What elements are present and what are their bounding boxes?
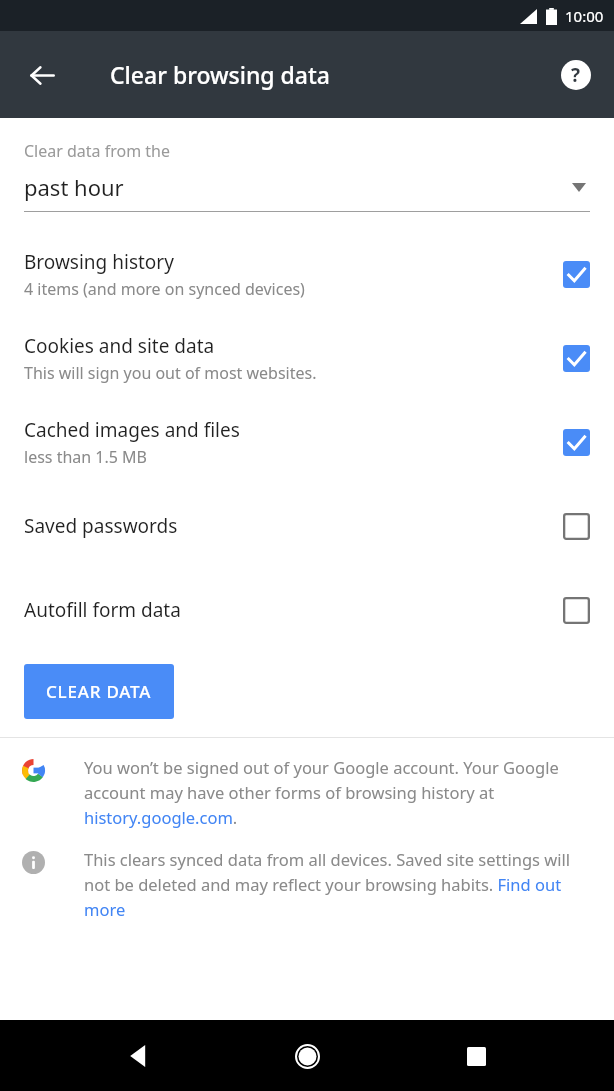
staticText: Browsing history [24,249,174,275]
button[interactable]: Home [277,1026,337,1086]
staticText: past hour [24,172,572,202]
staticText: Clear data from the [24,140,171,162]
button[interactable]: Back [109,1026,169,1086]
button[interactable]: Recent apps [446,1026,506,1086]
staticText: Saved passwords [24,513,178,539]
button[interactable]: Help [552,51,600,99]
staticText: 10:00 [565,6,604,26]
button[interactable]: CLEAR DATA [24,664,174,719]
staticText: 4 items (and more on synced devices) [24,278,305,300]
button[interactable]: Back [14,47,70,103]
button[interactable]: Cookies and site data [0,316,614,400]
button[interactable]: Cached images and files [0,400,614,484]
button[interactable]: This clears synced data from all devices… [0,840,614,924]
staticText: This will sign you out of most websites. [24,362,317,384]
button[interactable]: Browsing history [0,232,614,316]
button[interactable]: Clear data from the [24,140,590,212]
staticText: Cached images and files [24,417,240,443]
staticText: Clear browsing data [110,59,330,90]
staticText: CLEAR DATA [46,680,152,703]
button[interactable]: You won’t be signed out of your Google a… [0,748,614,832]
staticText: Autofill form data [24,597,181,623]
staticText: ? [571,62,581,88]
staticText: Cookies and site data [24,333,215,359]
staticText: less than 1.5 MB [24,446,147,468]
staticText: You won’t be signed out of your Google a… [84,756,594,828]
staticText: This clears synced data from all devices… [84,848,594,920]
button[interactable]: Autofill form data [0,568,614,652]
button[interactable]: Saved passwords [0,484,614,568]
